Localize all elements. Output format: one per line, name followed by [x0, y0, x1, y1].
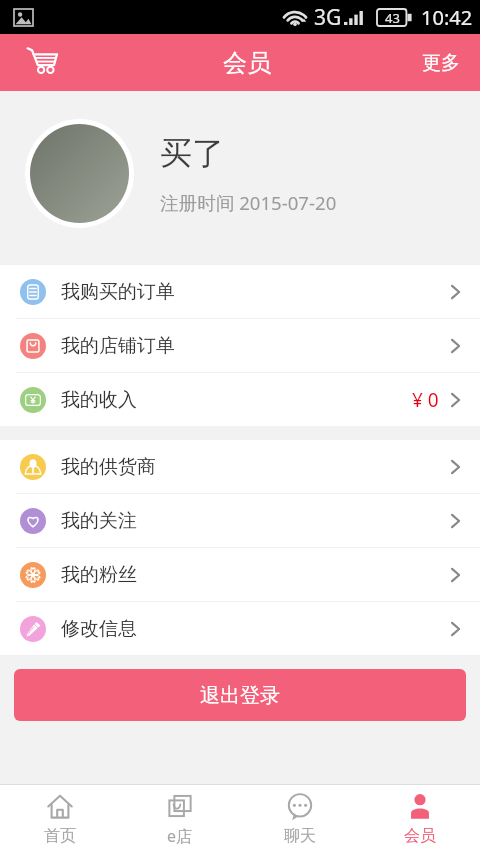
button[interactable]: 我购买的订单	[0, 265, 480, 318]
button[interactable]: 聊天	[240, 785, 360, 853]
staticText: 我的供货商	[61, 455, 156, 479]
staticText: 3G	[314, 3, 342, 32]
button[interactable]: 会员	[360, 785, 480, 853]
staticText: 43	[385, 9, 400, 26]
button[interactable]: e店	[120, 785, 240, 853]
staticText: e店	[167, 825, 193, 847]
staticText: 10:42	[421, 4, 473, 31]
staticText: 注册时间 2015-07-20	[160, 190, 337, 215]
staticText: 买了	[160, 133, 224, 173]
button[interactable]: 我的收入	[0, 373, 480, 426]
staticText: 我的粉丝	[61, 563, 137, 587]
button[interactable]: 退出登录	[14, 669, 466, 721]
button[interactable]: 更多	[404, 34, 480, 91]
button[interactable]: 修改信息	[0, 602, 480, 655]
staticText: 首页	[44, 826, 76, 846]
button[interactable]: 首页	[0, 785, 120, 853]
staticText: 更多	[422, 51, 460, 75]
button[interactable]: 我的关注	[0, 494, 480, 547]
staticText: 会员	[223, 48, 271, 78]
staticText: 我的关注	[61, 509, 137, 533]
button[interactable]: 我的粉丝	[0, 548, 480, 601]
staticText: 我的收入	[61, 388, 137, 412]
staticText: 修改信息	[61, 617, 137, 641]
button[interactable]: 我的店铺订单	[0, 319, 480, 372]
staticText: ¥ 0	[412, 387, 439, 413]
staticText: 退出登录	[200, 683, 280, 708]
staticText: 我购买的订单	[61, 280, 175, 304]
staticText: 我的店铺订单	[61, 334, 175, 358]
button[interactable]: 我的供货商	[0, 440, 480, 493]
staticText: 聊天	[284, 826, 316, 846]
button[interactable]: Shopping cart	[0, 34, 74, 91]
staticText: 会员	[404, 826, 436, 846]
